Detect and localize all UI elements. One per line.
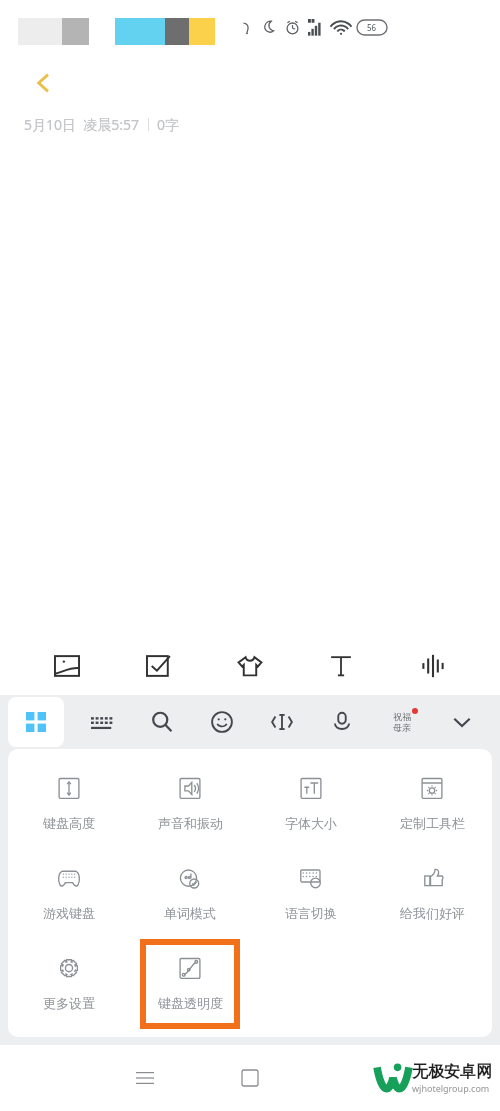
- button[interactable]: 定制工具栏: [382, 759, 482, 849]
- button[interactable]: Emoji: [200, 700, 244, 744]
- button[interactable]: Menu: [8, 697, 64, 747]
- button[interactable]: Voice: [409, 642, 457, 690]
- staticText: 定制工具栏: [400, 815, 465, 831]
- button[interactable]: Text format: [317, 642, 365, 690]
- button[interactable]: Search: [140, 700, 184, 744]
- staticText: 母亲: [393, 722, 411, 733]
- button[interactable]: Insert image: [43, 642, 91, 690]
- staticText: 祝福: [393, 711, 411, 722]
- button[interactable]: 字体大小: [261, 759, 361, 849]
- staticText: 键盘透明度: [158, 995, 223, 1011]
- staticText: wjhotelgroup.com: [412, 1082, 490, 1094]
- button[interactable]: Collapse: [440, 700, 484, 744]
- button[interactable]: 单词模式: [140, 849, 240, 939]
- staticText: 游戏键盘: [43, 905, 95, 921]
- button[interactable]: 给我们好评: [382, 849, 482, 939]
- staticText: 5月10日 凌晨5:57: [24, 115, 140, 134]
- button[interactable]: 更多设置: [19, 939, 119, 1029]
- staticText: 无极安卓网: [412, 1062, 492, 1082]
- button[interactable]: Checklist: [135, 642, 183, 690]
- button[interactable]: Voice input: [320, 700, 364, 744]
- button[interactable]: 游戏键盘: [19, 849, 119, 939]
- button[interactable]: Cursor: [260, 700, 304, 744]
- button[interactable]: 语言切换: [261, 849, 361, 939]
- button[interactable]: 祝福母亲: [380, 700, 424, 744]
- button[interactable]: 声音和振动: [140, 759, 240, 849]
- staticText: 给我们好评: [400, 905, 465, 921]
- button[interactable]: Back: [20, 59, 68, 107]
- staticText: 0字: [157, 115, 180, 134]
- staticText: 字体大小: [285, 815, 337, 831]
- staticText: 56: [367, 22, 377, 33]
- button[interactable]: Style: [226, 642, 274, 690]
- staticText: 语言切换: [285, 905, 337, 921]
- staticText: 单词模式: [164, 905, 216, 921]
- button[interactable]: Home: [226, 1054, 274, 1102]
- staticText: 键盘高度: [43, 815, 95, 831]
- button[interactable]: Recents: [121, 1054, 169, 1102]
- button[interactable]: 键盘透明度: [146, 945, 234, 1023]
- staticText: 声音和振动: [158, 815, 223, 831]
- button[interactable]: Keyboard: [80, 700, 124, 744]
- staticText: 更多设置: [43, 995, 95, 1011]
- button[interactable]: 键盘高度: [19, 759, 119, 849]
